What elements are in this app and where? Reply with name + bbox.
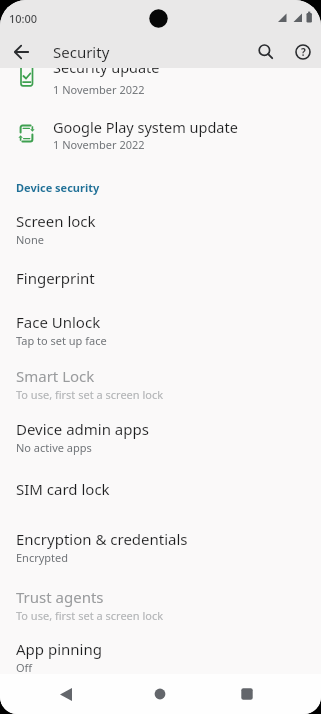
button[interactable]: SIM card lock xyxy=(0,473,321,507)
button[interactable]: Trust agents xyxy=(0,581,321,627)
staticText: 1 November 2022 xyxy=(53,82,145,97)
staticText: Face Unlock xyxy=(16,312,101,332)
staticText: Encrypted xyxy=(16,550,69,565)
button[interactable]: App pinning xyxy=(0,633,321,679)
button[interactable]: Screen lock xyxy=(0,205,321,251)
button[interactable]: Smart Lock xyxy=(0,360,321,406)
staticText: Fingerprint xyxy=(16,268,95,288)
staticText: Off xyxy=(16,660,33,675)
staticText: None xyxy=(16,232,45,247)
button[interactable]: Device admin apps xyxy=(0,413,321,459)
button[interactable]: Encryption & credentials xyxy=(0,523,321,569)
staticText: ? xyxy=(301,45,306,59)
staticText: To use, first set a screen lock xyxy=(16,608,164,623)
button[interactable]: Google Play system update xyxy=(0,114,321,166)
staticText: Tap to set up face xyxy=(16,333,107,348)
button[interactable]: ? xyxy=(288,37,318,67)
staticText: 10:00 xyxy=(9,11,38,26)
staticText: Device security xyxy=(16,180,100,195)
button[interactable] xyxy=(251,37,281,67)
staticText: SIM card lock xyxy=(16,479,110,499)
staticText: Device admin apps xyxy=(16,419,149,439)
staticText: Security update xyxy=(53,68,160,77)
button[interactable] xyxy=(52,680,80,708)
staticText: Smart Lock xyxy=(16,366,95,386)
staticText: No active apps xyxy=(16,440,92,455)
staticText: Encryption & credentials xyxy=(16,529,188,549)
staticText: To use, first set a screen lock xyxy=(16,387,164,402)
button[interactable]: Security update xyxy=(0,68,321,108)
button[interactable] xyxy=(6,37,36,67)
staticText: 1 November 2022 xyxy=(53,137,145,152)
button[interactable] xyxy=(233,680,261,708)
staticText: Google Play system update xyxy=(53,117,238,137)
staticText: Trust agents xyxy=(16,587,104,607)
button[interactable] xyxy=(146,680,174,708)
staticText: Security xyxy=(53,42,110,62)
button[interactable]: Fingerprint xyxy=(0,262,321,296)
button[interactable]: Face Unlock xyxy=(0,306,321,352)
staticText: App pinning xyxy=(16,639,102,659)
staticText: Screen lock xyxy=(16,211,96,231)
